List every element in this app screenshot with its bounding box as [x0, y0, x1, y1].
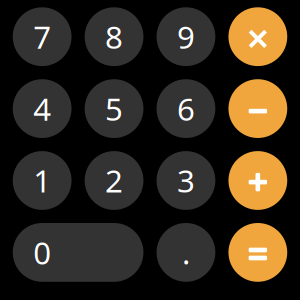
button[interactable]: 9 — [156, 7, 215, 66]
button[interactable]: 4 — [13, 79, 72, 138]
button[interactable]: 8 — [85, 7, 143, 66]
button[interactable]: 0 — [13, 223, 143, 282]
button[interactable]: 3 — [156, 151, 215, 210]
staticText: 5 — [105, 88, 123, 129]
staticText: 2 — [105, 160, 123, 201]
button[interactable]: 7 — [13, 7, 72, 66]
button[interactable]: 1 — [13, 151, 72, 210]
staticText: 9 — [177, 16, 195, 57]
button[interactable]: Add — [228, 151, 287, 210]
button[interactable]: Equals — [228, 223, 287, 282]
staticText: 4 — [33, 88, 51, 129]
staticText: . — [182, 232, 190, 273]
button[interactable]: Multiply — [228, 7, 287, 66]
staticText: 7 — [33, 16, 51, 57]
staticText: 1 — [33, 160, 51, 201]
button[interactable]: . — [156, 223, 215, 282]
button[interactable]: 5 — [85, 79, 143, 138]
button[interactable]: 6 — [156, 79, 215, 138]
button[interactable]: Subtract — [228, 79, 287, 138]
staticText: 3 — [177, 160, 195, 201]
button[interactable]: 2 — [85, 151, 143, 210]
staticText: 8 — [105, 16, 123, 57]
staticText: 0 — [33, 232, 51, 273]
staticText: 6 — [177, 88, 195, 129]
